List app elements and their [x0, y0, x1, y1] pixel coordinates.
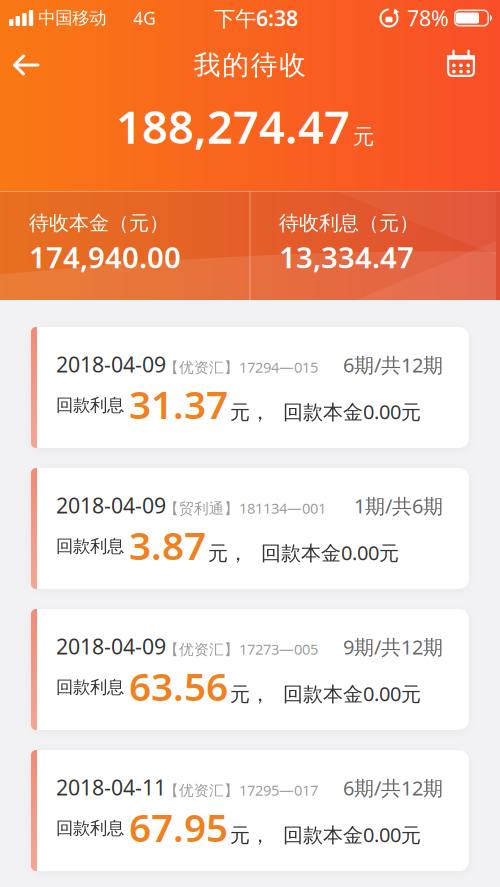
staticText: 回款利息: [56, 395, 124, 416]
staticText: 174,940.00: [29, 237, 181, 276]
staticText: 6期/共12期: [343, 351, 443, 378]
staticText: 【贸利通】181134—001: [164, 498, 326, 518]
staticText: 3.87: [129, 519, 206, 571]
staticText: 2018-04-09: [56, 632, 166, 660]
staticText: 67.95: [129, 801, 228, 853]
staticText: 2018-04-09: [56, 491, 166, 519]
button[interactable]: Calendar: [448, 36, 500, 88]
staticText: 元，: [230, 823, 270, 848]
button[interactable]: 2018-04-09: [31, 468, 469, 589]
staticText: 回款利息: [56, 536, 124, 557]
staticText: 63.56: [129, 660, 228, 712]
staticText: 元，: [230, 400, 270, 425]
button[interactable]: 2018-04-09: [31, 609, 469, 730]
staticText: 78%: [407, 4, 449, 32]
staticText: 待收利息（元）: [279, 211, 419, 235]
staticText: 2018-04-11: [56, 773, 166, 801]
staticText: 1期/共6期: [354, 492, 443, 519]
staticText: 下午6:38: [214, 4, 298, 32]
staticText: 回款本金0.00元: [283, 398, 421, 425]
staticText: 4G: [133, 6, 156, 29]
button[interactable]: Back: [0, 36, 44, 88]
staticText: 2018-04-09: [56, 350, 166, 378]
staticText: 回款利息: [56, 818, 124, 839]
staticText: 回款本金0.00元: [261, 539, 399, 566]
staticText: 待收本金（元）: [29, 211, 169, 235]
staticText: 元: [353, 123, 374, 150]
staticText: 31.37: [129, 378, 228, 430]
button[interactable]: 2018-04-11: [31, 750, 469, 871]
staticText: 【优资汇】17273—005: [164, 639, 318, 659]
staticText: 9期/共12期: [343, 633, 443, 660]
staticText: 中国移动: [38, 7, 106, 29]
staticText: 【优资汇】17295—017: [164, 780, 318, 800]
staticText: 元，: [230, 682, 270, 707]
staticText: 回款本金0.00元: [283, 821, 421, 848]
staticText: 回款利息: [56, 677, 124, 698]
staticText: 元，: [208, 541, 248, 566]
button[interactable]: 2018-04-09: [31, 327, 469, 448]
staticText: 13,334.47: [279, 237, 414, 276]
staticText: 188,274.47: [116, 96, 350, 156]
staticText: 【优资汇】17294—015: [164, 357, 318, 377]
staticText: 6期/共12期: [343, 774, 443, 801]
staticText: 我的待收: [194, 49, 306, 81]
staticText: 回款本金0.00元: [283, 680, 421, 707]
